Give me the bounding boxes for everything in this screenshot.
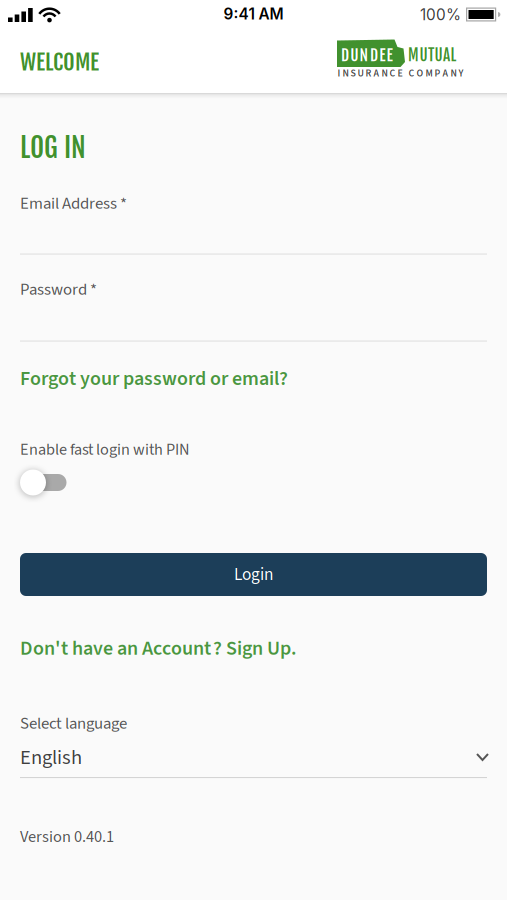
staticText: MUTUAL	[408, 46, 456, 65]
staticText: Version 0.40.1	[20, 825, 114, 849]
button[interactable]: Login	[20, 553, 487, 596]
button[interactable]: English	[20, 743, 487, 773]
staticText: Login	[234, 562, 273, 587]
staticText: DUNDEE	[341, 45, 392, 65]
staticText: WELCOME	[20, 48, 99, 76]
staticText: English	[20, 743, 82, 772]
staticText: Enable fast login with PIN	[20, 438, 190, 461]
button[interactable]: Forgot your password or email?	[20, 364, 288, 393]
staticText: LOG IN	[20, 131, 86, 165]
staticText: Select language	[20, 711, 127, 735]
staticText: 100%	[420, 5, 461, 24]
staticText: Email Address *	[20, 191, 127, 215]
staticText: Don't have an Account ? Sign Up.	[20, 634, 297, 663]
staticText: I N S U R A N C E C O M P A N Y	[337, 66, 463, 81]
staticText: Forgot your password or email?	[20, 364, 288, 393]
staticText: 9:41 AM	[223, 5, 283, 23]
button[interactable]: Don't have an Account ? Sign Up.	[20, 634, 297, 663]
staticText: Password *	[20, 277, 97, 301]
button[interactable]	[20, 469, 67, 495]
